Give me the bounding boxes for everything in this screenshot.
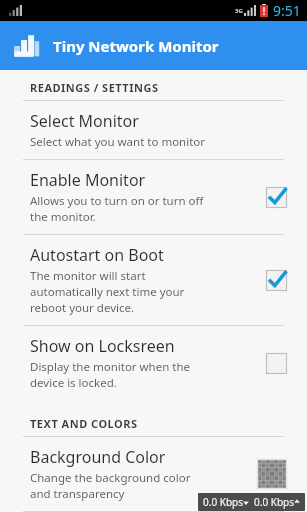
- staticText: Select Monitor: [30, 110, 139, 132]
- button[interactable]: 0.0 Kbps: [198, 493, 305, 511]
- staticText: 0.0 Kbps: [254, 495, 294, 509]
- staticText: and transparency: [30, 486, 125, 502]
- staticText: Show on Locksreen: [30, 335, 175, 357]
- staticText: Autostart on Boot: [30, 244, 164, 266]
- button[interactable]: Unchecked: [266, 353, 287, 374]
- staticText: the monitor.: [30, 209, 96, 225]
- staticText: 9:51: [273, 1, 301, 20]
- button[interactable]: Show on Locksreen: [0, 326, 307, 400]
- staticText: Enable Monitor: [30, 169, 146, 191]
- staticText: The monitor will start: [30, 268, 146, 284]
- staticText: Allows you to turn on or turn off: [30, 193, 204, 209]
- button[interactable]: Checked: [266, 270, 287, 291]
- button[interactable]: Enable Monitor: [0, 160, 307, 234]
- button[interactable]: Background Color: [0, 437, 307, 511]
- staticText: READINGS / SETTINGS: [30, 80, 159, 95]
- staticText: Tiny Network Monitor: [53, 36, 219, 56]
- staticText: Display the monitor when the: [30, 359, 191, 375]
- staticText: 3G: [235, 7, 243, 15]
- staticText: Background Color: [30, 446, 166, 468]
- staticText: Change the background color: [30, 470, 191, 486]
- button[interactable]: Autostart on Boot: [0, 235, 307, 325]
- button[interactable]: Background color swatch: [257, 459, 287, 489]
- staticText: reboot your device.: [30, 300, 135, 316]
- button[interactable]: Select Monitor: [0, 101, 307, 159]
- staticText: Select what you want to monitor: [30, 134, 206, 150]
- button[interactable]: Checked: [266, 187, 287, 208]
- staticText: 0.0 Kbps: [203, 495, 243, 509]
- staticText: automatically next time your: [30, 284, 185, 300]
- staticText: device is locked.: [30, 375, 117, 391]
- staticText: TEXT AND COLORS: [30, 416, 138, 431]
